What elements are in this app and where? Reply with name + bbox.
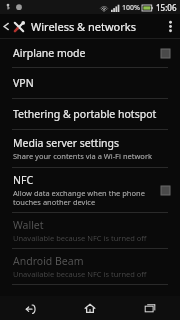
button[interactable]: NFC xyxy=(0,168,180,212)
button[interactable]: More options xyxy=(161,16,180,37)
staticText: 100% xyxy=(122,3,140,13)
staticText: Wallet xyxy=(13,218,44,232)
staticText: Unavailable because NFC is turned off xyxy=(13,269,147,279)
staticText: Allow data exchange when the phone touch… xyxy=(13,188,155,207)
button[interactable]: Navigate up xyxy=(0,19,140,34)
staticText: Airplane mode xyxy=(13,46,86,60)
staticText: Android Beam xyxy=(13,254,84,268)
button[interactable]: Tethering & portable hotspot xyxy=(0,99,180,129)
button[interactable]: VPN xyxy=(0,68,180,98)
staticText: NFC xyxy=(13,173,34,187)
staticText: Tethering & portable hotspot xyxy=(13,107,157,121)
staticText: 15:06 xyxy=(156,2,177,13)
button[interactable]: Back xyxy=(0,296,60,320)
button[interactable]: Home xyxy=(60,296,120,320)
staticText: Media server settings xyxy=(13,136,120,150)
staticText: Share your contents via a Wi-Fi network xyxy=(13,151,152,161)
button[interactable]: Recent apps xyxy=(120,296,180,320)
button[interactable]: Wallet xyxy=(0,213,180,248)
button[interactable]: Airplane mode xyxy=(0,39,180,67)
staticText: Unavailable because NFC is turned off xyxy=(13,233,147,243)
staticText: Wireless & networks xyxy=(31,19,136,34)
button[interactable]: Media server settings xyxy=(0,130,180,167)
staticText: VPN xyxy=(13,76,34,90)
button[interactable]: Android Beam xyxy=(0,249,180,284)
